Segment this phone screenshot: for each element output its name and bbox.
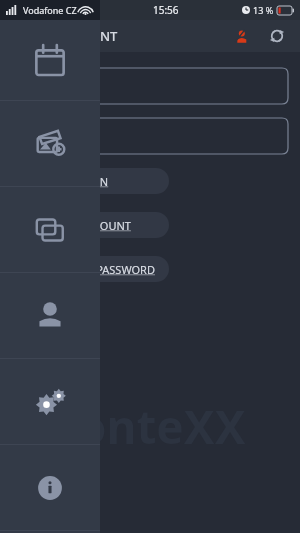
button[interactable]: NEW ACCOUNT bbox=[14, 212, 169, 238]
staticText: LOGIN bbox=[74, 174, 109, 189]
button[interactable]: Settings bbox=[0, 359, 100, 444]
button[interactable]: login bbox=[14, 62, 288, 104]
staticText: NEW ACCOUNT bbox=[52, 218, 131, 233]
button[interactable]: Albums bbox=[0, 187, 100, 272]
staticText: 15:56 bbox=[153, 3, 179, 17]
button[interactable]: Not logged in bbox=[228, 23, 254, 49]
button[interactable]: password bbox=[14, 112, 288, 154]
staticText: 13 % bbox=[253, 4, 274, 16]
button[interactable]: Info bbox=[0, 445, 100, 530]
staticText: login bbox=[44, 62, 68, 76]
button[interactable]: Add photo bbox=[0, 101, 100, 186]
button[interactable]: LOGIN bbox=[14, 168, 169, 194]
staticText: ACCOUNT bbox=[56, 27, 118, 45]
staticText: FORGOTTEN PASSWORD bbox=[29, 262, 155, 277]
button[interactable]: Sync bbox=[264, 23, 290, 49]
button[interactable]: Profile bbox=[0, 273, 100, 358]
button[interactable]: Calendar bbox=[0, 20, 100, 100]
staticText: conteXX bbox=[54, 395, 246, 458]
staticText: Vodafone CZ bbox=[23, 4, 77, 16]
button[interactable]: FORGOTTEN PASSWORD bbox=[14, 256, 169, 282]
